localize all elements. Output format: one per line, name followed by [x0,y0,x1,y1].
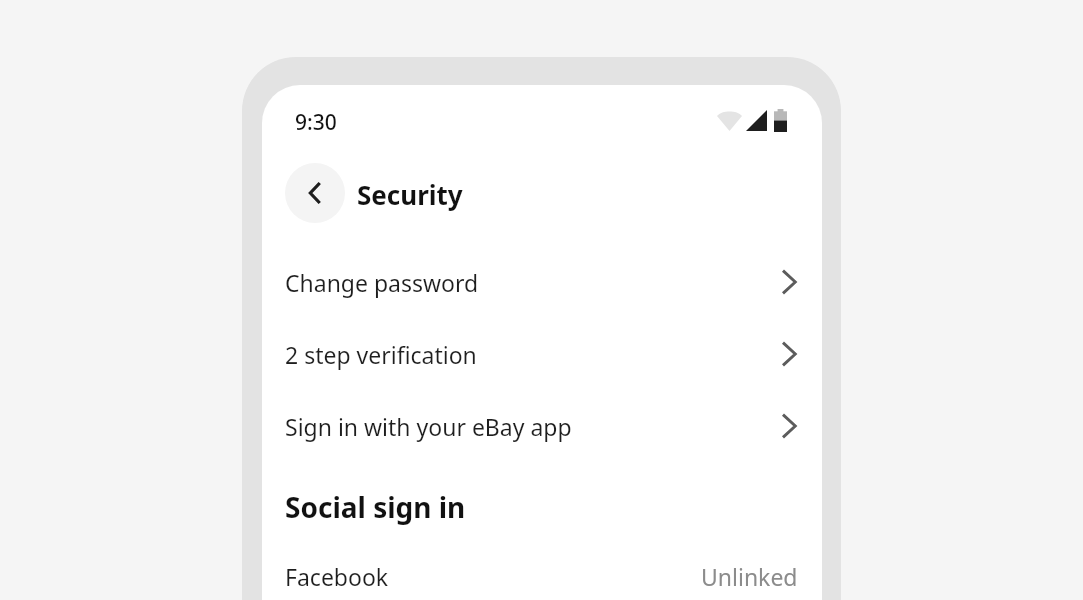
staticText: Social sign in [285,488,466,526]
button[interactable]: Sign in with your eBay app [262,390,822,462]
staticText: Security [357,177,463,212]
staticText: Sign in with your eBay app [285,411,572,442]
button[interactable]: 2 step verification [262,318,822,390]
staticText: 2 step verification [285,339,477,370]
staticText: 9:30 [295,108,337,137]
staticText: Change password [285,267,479,298]
button[interactable]: Change password [262,246,822,318]
staticText: Unlinked [701,561,798,592]
button[interactable]: Back [285,163,345,223]
button[interactable]: Facebook [262,545,822,600]
staticText: Facebook [285,561,389,592]
